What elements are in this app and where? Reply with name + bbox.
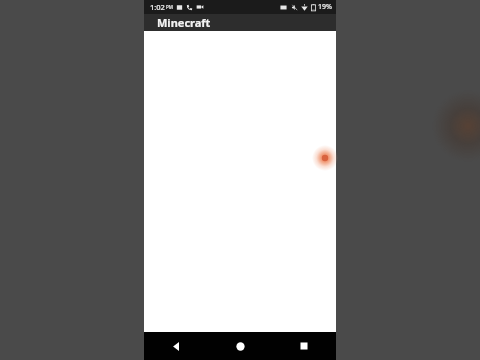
button[interactable]: Recent apps — [272, 332, 336, 360]
staticText: 19% — [318, 2, 332, 12]
staticText: 1:02 — [150, 2, 165, 12]
button[interactable]: Minecraft — [144, 14, 336, 31]
staticText: Minecraft — [157, 15, 211, 30]
button[interactable]: Home — [208, 332, 272, 360]
button[interactable]: Back — [144, 332, 208, 360]
staticText: PM — [166, 4, 173, 10]
